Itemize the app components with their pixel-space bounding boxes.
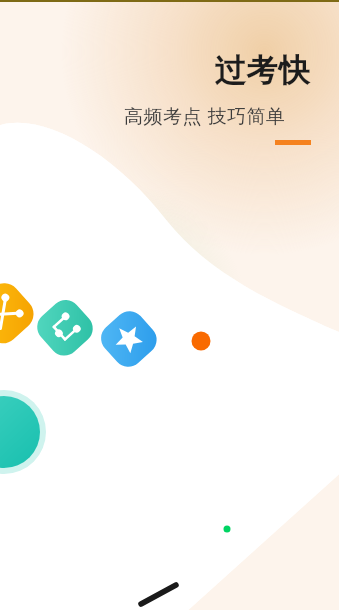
button[interactable]: 高频考点 技巧简单: [124, 103, 318, 129]
staticText: 过考快: [214, 51, 310, 90]
button[interactable]: 随机练习: [0, 288, 34, 322]
button[interactable]: 过考快: [214, 51, 318, 91]
button[interactable]: 统计练习: [23, 339, 57, 373]
staticText: 高频考点 技巧简单: [124, 103, 286, 129]
button[interactable]: 考试模拟: [0, 396, 44, 468]
